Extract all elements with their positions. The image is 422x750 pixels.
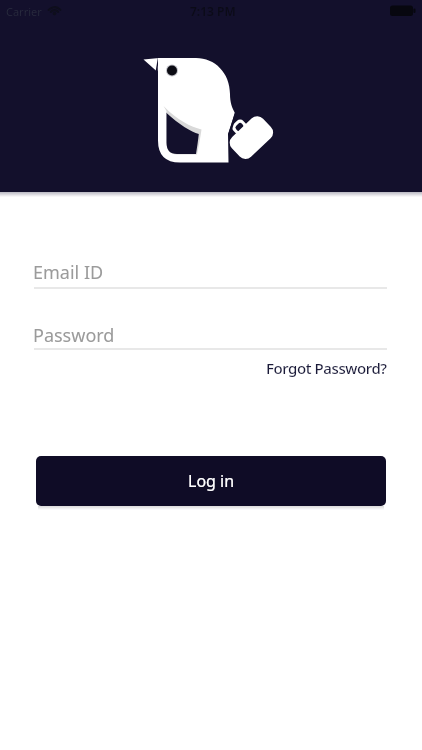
staticText: 7:13 PM (190, 3, 236, 19)
button[interactable]: Log in (36, 456, 386, 506)
staticText: Forgot Password? (266, 358, 387, 378)
staticText: Carrier (6, 4, 42, 19)
button[interactable]: Forgot Password? (266, 358, 387, 378)
button[interactable]: Email ID (33, 256, 386, 286)
staticText: Password (33, 323, 115, 348)
staticText: Email ID (33, 260, 104, 285)
button[interactable]: Password (33, 319, 386, 346)
staticText: Log in (188, 470, 235, 492)
